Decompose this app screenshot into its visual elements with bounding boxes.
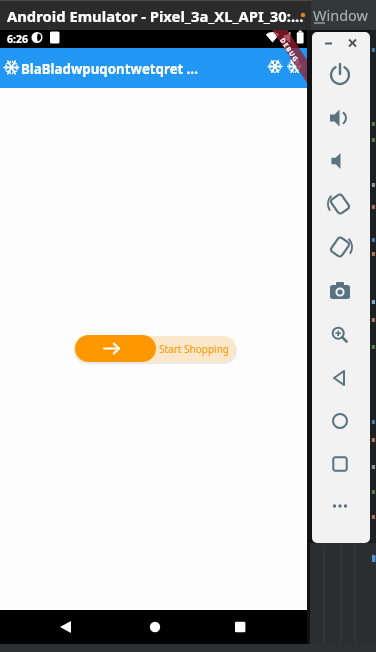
button[interactable] [322,57,358,93]
button[interactable] [322,100,358,136]
staticText: 6:26 [7,32,28,46]
button[interactable] [322,186,358,222]
button[interactable]: Start Shopping [74,336,236,362]
button[interactable] [322,229,358,265]
button[interactable] [128,610,183,644]
button[interactable] [322,273,358,309]
staticText: DEBUG [278,36,301,64]
button[interactable] [45,610,100,644]
staticText: Start Shopping [159,342,229,356]
button[interactable] [75,335,156,362]
button[interactable] [344,36,358,50]
button[interactable] [322,317,358,353]
button[interactable] [322,488,358,524]
button[interactable] [322,143,358,179]
button[interactable] [322,360,358,396]
button[interactable] [322,403,358,439]
staticText: Android Emulator - Pixel_3a_XL_API_30:..… [7,6,304,26]
staticText: Window [313,5,368,25]
button[interactable] [215,610,270,644]
button[interactable] [322,446,358,482]
staticText: BlaBladwpuqontwetqret ... [21,60,199,78]
button[interactable] [318,36,332,50]
